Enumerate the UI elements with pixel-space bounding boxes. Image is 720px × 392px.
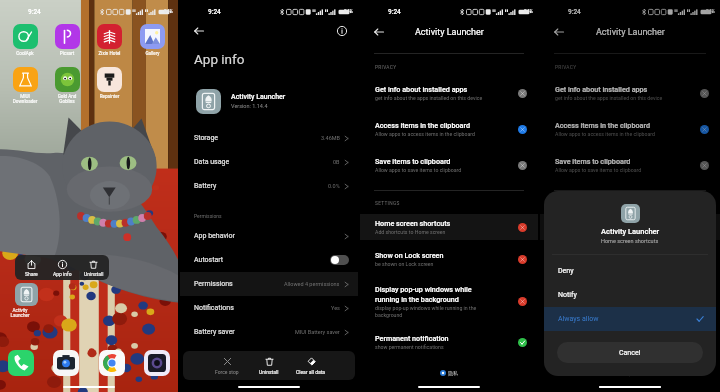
button[interactable]: Back [552, 25, 566, 39]
button[interactable]: Permanent notification [540, 329, 720, 355]
staticText: Allow apps to save items to clipboard [375, 167, 462, 173]
staticText: 94% [706, 9, 715, 15]
button[interactable]: CoolApk [4, 24, 46, 56]
button[interactable] [99, 350, 125, 376]
staticText: Allow apps to access items in the clipbo… [555, 131, 655, 137]
button[interactable]: Data usage [180, 150, 358, 174]
staticText: Cancel [619, 349, 641, 357]
button[interactable]: Display pop-up windows while running in … [360, 280, 538, 323]
button[interactable]: App behavior [180, 224, 358, 248]
staticText: 94% [164, 9, 173, 15]
staticText: Gallery [131, 51, 174, 56]
button[interactable]: Share [15, 255, 47, 280]
staticText: Permissions [194, 280, 233, 288]
button[interactable]: Picsart [46, 24, 88, 56]
staticText: PRIVACY [555, 65, 577, 71]
staticText: App info [194, 51, 245, 67]
staticText: Yes [331, 305, 340, 311]
staticText: 0B [333, 159, 340, 165]
button[interactable]: Repainter [88, 67, 131, 99]
staticText: PRIVACY [375, 65, 397, 71]
button[interactable]: Access items in the clipboard [360, 116, 538, 142]
staticText: Allowed 4 permissions [284, 281, 340, 287]
button[interactable]: App info [47, 255, 78, 280]
button[interactable]: Get info about installed apps [360, 80, 538, 106]
staticText: SETTINGS [375, 201, 400, 207]
staticText: Show on Lock screen [555, 251, 624, 259]
button[interactable]: Show on Lock screen [540, 246, 720, 272]
staticText: Save items to clipboard [555, 157, 631, 165]
button[interactable]: Cancel [557, 342, 703, 363]
staticText: MIUI Battery saver [295, 329, 340, 335]
staticText: get info about the apps installed on thi… [375, 95, 483, 101]
button[interactable]: Battery [180, 174, 358, 198]
staticText: 94% [524, 9, 533, 15]
button[interactable]: Always allow [544, 307, 716, 331]
staticText: Get info about installed apps [375, 85, 468, 93]
staticText: Zixin Hotel [88, 51, 131, 56]
button[interactable]: Home screen shortcuts [540, 214, 720, 240]
staticText: Gold And Goblins [46, 94, 88, 104]
staticText: get info about the apps installed on thi… [555, 95, 663, 101]
button[interactable]: MIUI Downloader [4, 67, 46, 104]
staticText: be shown on Lock screen [375, 261, 434, 267]
staticText: Show on Lock screen [375, 251, 444, 259]
button[interactable]: Get info about installed apps [540, 80, 720, 106]
staticText: 9:24 [568, 8, 581, 16]
staticText: Uninstall [84, 271, 104, 277]
staticText: Home screen shortcuts [555, 219, 631, 227]
button[interactable]: Storage [180, 126, 358, 150]
button[interactable]: Permissions [180, 272, 358, 296]
staticText: Home screen shortcuts [601, 238, 659, 244]
button[interactable]: Display pop-up windows while running in … [540, 280, 720, 323]
button[interactable]: Uninstall [248, 351, 290, 380]
button[interactable]: Access items in the clipboard [540, 116, 720, 142]
button[interactable]: Battery saver [180, 320, 358, 344]
staticText: Force stop [215, 369, 239, 375]
staticText: 9:24 [208, 8, 221, 16]
staticText: Battery [194, 182, 217, 190]
staticText: Activity Launcher [596, 27, 665, 38]
staticText: show permanent notifications [375, 344, 444, 350]
staticText: Clear all data [296, 369, 326, 375]
button[interactable]: Notifications [180, 296, 358, 320]
button[interactable]: Notify [544, 283, 716, 307]
button[interactable]: Permanent notification [360, 329, 538, 355]
button[interactable]: Home screen shortcuts [360, 214, 538, 240]
button[interactable]: Back [372, 25, 386, 39]
staticText: MIUI Downloader [4, 94, 46, 104]
staticText: CoolApk [4, 51, 46, 56]
staticText: Home screen shortcuts [375, 219, 451, 227]
button[interactable]: Back [192, 24, 206, 38]
staticText: 隐私 [448, 370, 458, 376]
staticText: Activity Launcher [601, 227, 660, 236]
button[interactable] [144, 350, 170, 376]
staticText: Uninstall [259, 369, 279, 375]
button[interactable]: Clear all data [290, 351, 332, 380]
button[interactable]: Save items to clipboard [360, 152, 538, 178]
button[interactable]: Show on Lock screen [360, 246, 538, 272]
button[interactable]: Help [336, 25, 348, 37]
staticText: Access items in the clipboard [555, 121, 650, 129]
button[interactable]: Gold And Goblins [46, 67, 88, 104]
staticText: Autostart [194, 256, 224, 264]
button[interactable]: Gallery [131, 24, 174, 56]
staticText: Allow apps to access items in the clipbo… [375, 131, 475, 137]
button[interactable]: Force stop [206, 351, 248, 380]
button[interactable] [53, 350, 79, 376]
button[interactable] [8, 350, 34, 376]
button[interactable]: Deny [544, 259, 716, 283]
staticText: Permanent notification [375, 334, 449, 342]
button[interactable]: Uninstall [78, 255, 109, 280]
button[interactable]: Zixin Hotel [88, 24, 131, 56]
button[interactable]: Autostart [180, 248, 358, 272]
staticText: Version: 1.14.4 [231, 103, 268, 109]
staticText: Add shortcuts to Home screen [375, 229, 446, 235]
button[interactable]: Activity Launcher [180, 87, 358, 115]
button[interactable]: Save items to clipboard [540, 152, 720, 178]
staticText: Add shortcuts to Home screen [555, 229, 626, 235]
staticText: 9:24 [28, 8, 41, 16]
